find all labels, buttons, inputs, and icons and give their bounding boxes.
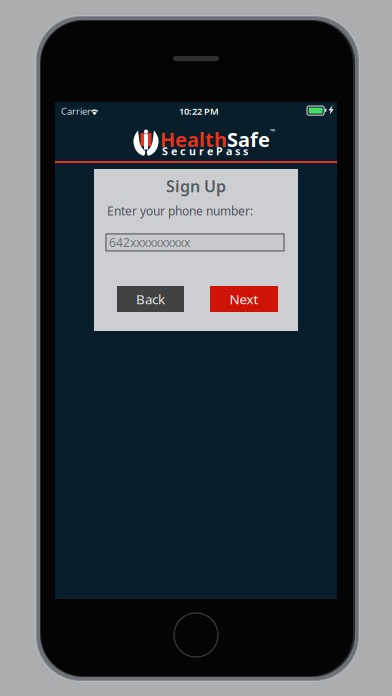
staticText: Safe xyxy=(227,126,270,153)
staticText: S e c u r e P a s s xyxy=(162,144,248,158)
staticText: Back xyxy=(136,290,165,308)
staticText: Carrier xyxy=(61,105,91,117)
staticText: ™ xyxy=(270,127,275,136)
staticText: 642xxxxxxxxxx xyxy=(109,234,190,250)
staticText: Enter your phone number: xyxy=(107,203,253,219)
staticText: Sign Up xyxy=(166,175,226,197)
staticText: Health xyxy=(160,126,227,153)
staticText: Next xyxy=(229,290,258,308)
button[interactable]: Next xyxy=(210,286,278,312)
button[interactable]: Back xyxy=(117,286,184,312)
staticText: 10:22 PM xyxy=(179,105,219,117)
